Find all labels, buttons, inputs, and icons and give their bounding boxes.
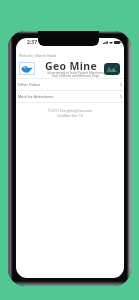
staticText: Tool of Mines and Minerals Dept. (52, 74, 100, 78)
staticText: Mark for Attendance (18, 94, 54, 99)
button[interactable]: Map (104, 63, 120, 75)
staticText: © 2017 EverythingCisco.com (16, 108, 124, 112)
staticText: GeoMine Ver 1.0 (16, 113, 124, 117)
staticText: Welcome, Utkarsh Rawat (19, 54, 57, 58)
staticText: Other Duties (18, 82, 41, 87)
button[interactable]: Mark for Attendance (16, 91, 124, 102)
staticText: Geo Mine (45, 59, 98, 73)
button[interactable]: Other Duties (16, 79, 124, 90)
staticText: Government of India Project Monitoring (47, 71, 106, 75)
staticText: 2:37 (27, 39, 37, 46)
